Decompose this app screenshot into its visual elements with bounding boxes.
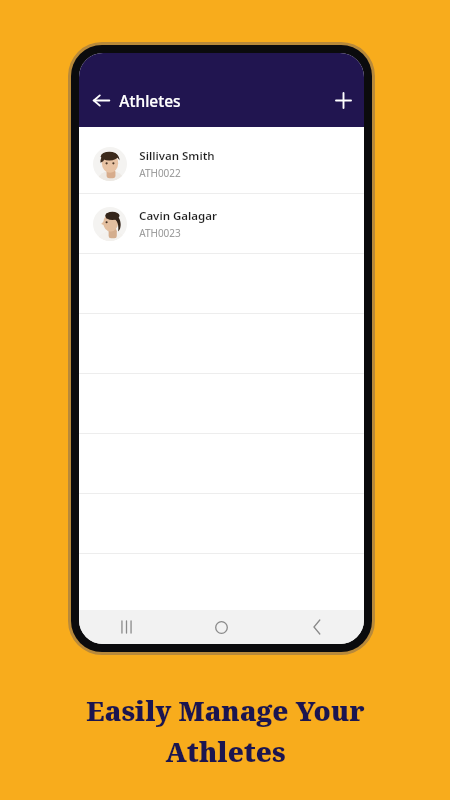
staticText: ATH0022: [139, 166, 181, 180]
staticText: Athletes: [165, 733, 286, 770]
button[interactable]: Back: [84, 83, 118, 117]
button[interactable]: Recent apps: [79, 610, 174, 644]
staticText: Easily Manage Your: [86, 692, 365, 729]
button[interactable]: Sillivan Smith: [79, 134, 364, 193]
staticText: ATH0023: [139, 226, 181, 240]
button[interactable]: Home: [174, 610, 269, 644]
button[interactable]: Cavin Galagar: [79, 194, 364, 253]
staticText: Sillivan Smith: [139, 148, 215, 164]
button[interactable]: Add athlete: [326, 83, 360, 117]
staticText: Cavin Galagar: [139, 208, 217, 224]
staticText: Athletes: [119, 90, 181, 111]
button[interactable]: Back: [269, 610, 364, 644]
